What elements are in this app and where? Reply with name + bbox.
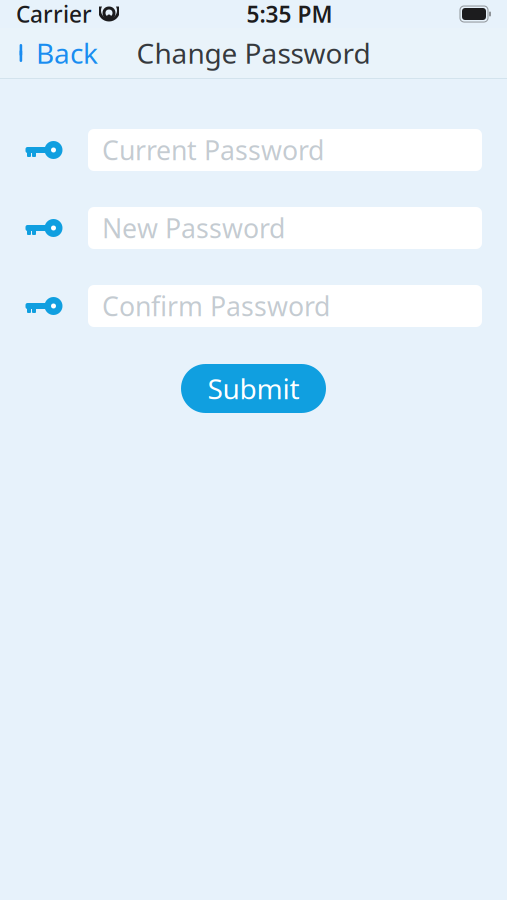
- button[interactable]: Current Password: [88, 129, 482, 171]
- staticText: Submit: [207, 370, 299, 407]
- staticText: Confirm Password: [102, 288, 330, 324]
- staticText: Current Password: [102, 132, 324, 168]
- staticText: New Password: [102, 210, 285, 246]
- staticText: Carrier: [16, 0, 92, 29]
- button[interactable]: New Password: [88, 207, 482, 249]
- button[interactable]: Submit: [181, 364, 326, 413]
- staticText: Back: [36, 34, 98, 72]
- button[interactable]: Back: [0, 28, 114, 78]
- staticText: Change Password: [136, 34, 370, 72]
- button[interactable]: Confirm Password: [88, 285, 482, 327]
- staticText: 5:35 PM: [246, 0, 332, 29]
